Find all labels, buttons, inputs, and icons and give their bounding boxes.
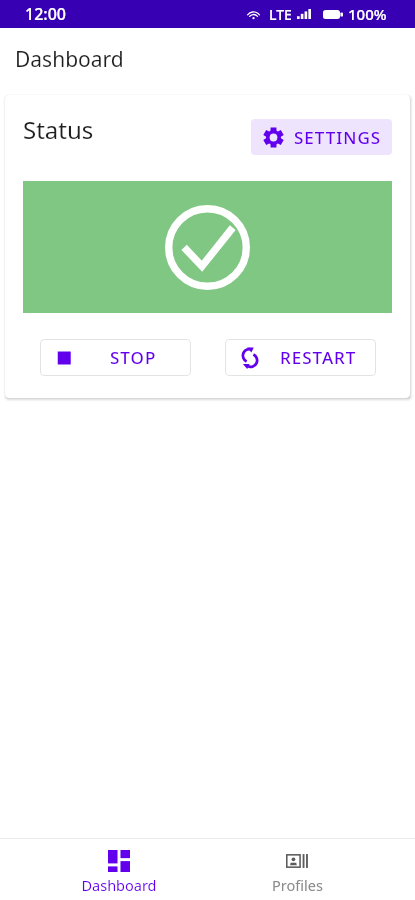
- button[interactable]: Profiles: [208, 839, 386, 900]
- staticText: LTE: [269, 5, 292, 24]
- staticText: Profiles: [272, 875, 323, 895]
- staticText: Dashboard: [81, 875, 157, 895]
- staticText: RESTART: [280, 346, 357, 369]
- button[interactable]: STOP: [40, 339, 191, 376]
- button[interactable]: RESTART: [225, 339, 376, 376]
- staticText: 12:00: [25, 3, 66, 25]
- staticText: STOP: [110, 346, 157, 369]
- staticText: SETTINGS: [294, 126, 382, 149]
- staticText: Status: [23, 113, 94, 146]
- button[interactable]: Dashboard: [30, 839, 208, 900]
- staticText: 100%: [348, 4, 387, 24]
- button[interactable]: SETTINGS: [251, 119, 392, 155]
- staticText: Dashboard: [15, 45, 124, 74]
